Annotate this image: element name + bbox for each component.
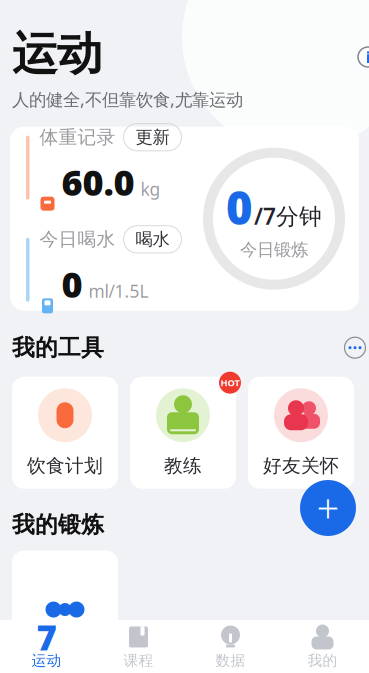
button[interactable]: 我的 [276, 620, 368, 673]
staticText: 我的工具 [12, 334, 104, 362]
button[interactable]: 信息 [353, 42, 369, 72]
button[interactable]: 课程 [92, 620, 184, 673]
button[interactable]: 添加 [300, 480, 356, 536]
staticText: 我的 [307, 651, 337, 669]
staticText: /7分钟 [254, 201, 322, 231]
staticText: ml/1.5L [88, 280, 148, 303]
button[interactable]: 喝水 [123, 226, 181, 253]
button[interactable]: 好友关怀 [248, 377, 354, 489]
button[interactable]: 饮食计划 [12, 377, 118, 489]
staticText: 好友关怀 [263, 454, 339, 477]
staticText: 课程 [123, 651, 153, 669]
staticText: 体重记录 [39, 126, 115, 149]
staticText: 0 [226, 177, 253, 237]
button[interactable]: 更新 [123, 123, 181, 151]
staticText: 饮食计划 [27, 454, 103, 477]
staticText: 我的锻炼 [12, 511, 104, 538]
button[interactable]: 数据 [184, 620, 276, 673]
staticText: 运动 [31, 651, 61, 669]
staticText: 数据 [215, 651, 245, 669]
button[interactable]: 教练 [130, 377, 236, 489]
staticText: 喝水 [135, 229, 169, 250]
staticText: 0 [61, 260, 82, 308]
button[interactable] [12, 550, 118, 640]
staticText: 今日锻炼 [240, 239, 308, 260]
staticText: + [316, 481, 339, 534]
staticText: 7 [36, 614, 56, 660]
staticText: 人的健全,不但靠饮食,尤靠运动 [12, 88, 243, 111]
staticText: 更新 [135, 126, 169, 148]
button[interactable]: 更多工具 [340, 333, 369, 363]
staticText: 运动 [12, 26, 102, 82]
staticText: 60.0 [61, 158, 134, 206]
staticText: i [365, 46, 369, 68]
staticText: 教练 [164, 454, 202, 477]
staticText: HOT [220, 376, 239, 389]
staticText: 今日喝水 [39, 228, 115, 251]
staticText: kg [140, 177, 160, 200]
button[interactable]: 7 [0, 620, 92, 673]
